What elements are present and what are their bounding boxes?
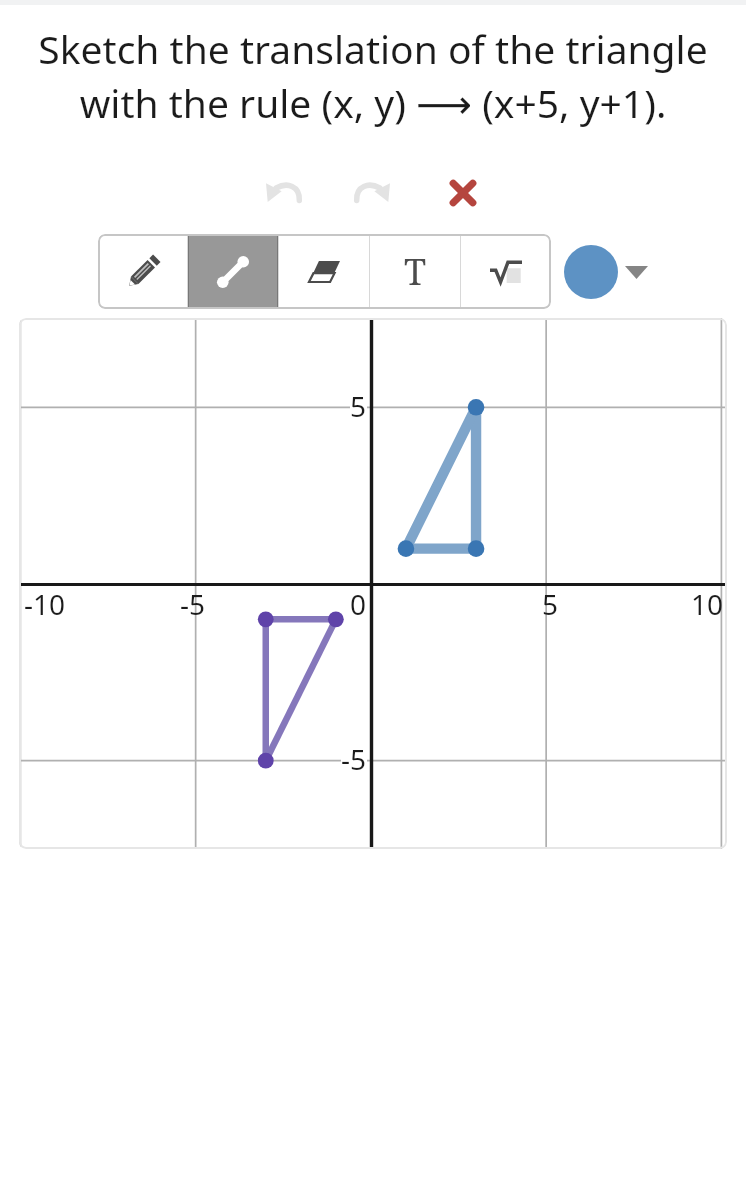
- button[interactable]: Clear all: [436, 166, 490, 220]
- staticText: T: [404, 247, 427, 296]
- button[interactable]: Text: [370, 234, 460, 309]
- staticText: -10: [24, 585, 66, 623]
- staticText: Sketch the translation of the triangle w…: [14, 22, 732, 129]
- button[interactable]: Choose colour: [620, 256, 652, 288]
- button[interactable]: Eraser: [279, 234, 369, 309]
- button[interactable]: Current colour: [564, 245, 618, 299]
- button[interactable]: Redo: [346, 165, 400, 219]
- staticText: -5: [180, 585, 206, 623]
- button[interactable]: Math expression: [461, 234, 551, 309]
- button[interactable]: Pencil: [98, 234, 187, 309]
- staticText: -5: [341, 740, 367, 778]
- staticText: 5: [350, 387, 367, 425]
- staticText: 10: [691, 585, 724, 623]
- staticText: 5: [542, 585, 559, 623]
- staticText: 0: [350, 585, 367, 623]
- button[interactable]: Undo: [256, 165, 310, 219]
- button[interactable]: Line segment: [188, 234, 278, 309]
